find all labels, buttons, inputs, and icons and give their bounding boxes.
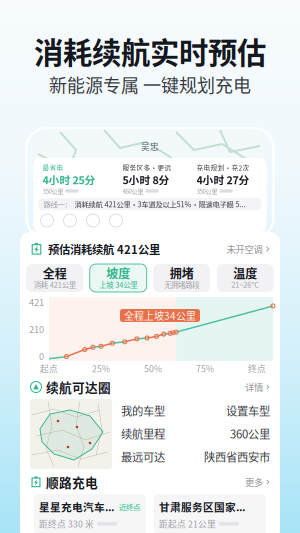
staticText: 星星充电汽车... xyxy=(39,499,114,514)
button[interactable]: 星星充电汽车... xyxy=(34,494,146,533)
staticText: 吴忠 xyxy=(141,140,159,152)
staticText: 终点 xyxy=(248,362,266,375)
staticText: 消耗 421公里 xyxy=(34,279,76,290)
staticText: 50% xyxy=(144,362,162,375)
button[interactable]: 详情 xyxy=(245,380,270,394)
staticText: 全程上坡34公里 xyxy=(124,308,196,323)
staticText: 全程 xyxy=(43,264,67,282)
staticText: 最省电 xyxy=(42,163,63,172)
staticText: 甘肃服务区国家... xyxy=(159,499,245,514)
staticText: 更多 xyxy=(245,475,263,489)
staticText: 详情 xyxy=(245,380,263,394)
staticText: 21~26°C xyxy=(231,279,259,290)
staticText: 路线一： xyxy=(43,199,71,209)
staticText: 顺路充电 xyxy=(46,473,98,491)
staticText: 拥堵 xyxy=(170,264,194,282)
button[interactable]: 更多 xyxy=(245,475,270,489)
button[interactable]: 甘肃服务区国家... xyxy=(154,494,266,533)
staticText: 未开空调 xyxy=(227,242,263,256)
staticText: 350公里 xyxy=(196,187,217,195)
staticText: 温度 xyxy=(233,264,257,282)
staticText: 续航里程 xyxy=(121,425,165,442)
staticText: 75% xyxy=(196,362,214,375)
button[interactable]: 未开空调 xyxy=(227,242,270,256)
staticText: 续航可达圈 xyxy=(46,378,111,396)
staticText: 我的车型 xyxy=(121,402,165,419)
staticText: 210 xyxy=(29,322,44,336)
staticText: 4小时 25分 xyxy=(42,172,95,187)
staticText: 最远可达 xyxy=(121,448,165,465)
staticText: 近终点 xyxy=(119,501,140,512)
staticText: 消耗续航 421公里·3车道及以上51%·限速电子眼 5... xyxy=(74,199,245,209)
staticText: 距终点 330 米 xyxy=(39,517,94,530)
staticText: 消耗续航实时预估 xyxy=(34,30,266,72)
staticText: 设置车型 xyxy=(226,402,270,419)
button[interactable]: 拥堵 xyxy=(153,264,210,292)
staticText: 360公里 xyxy=(230,425,270,442)
button[interactable]: 温度 xyxy=(217,264,274,292)
staticText: 421 xyxy=(29,295,44,309)
button[interactable]: 全程 xyxy=(26,264,83,292)
staticText: 0 xyxy=(39,349,44,363)
staticText: 坡度 xyxy=(106,264,130,282)
staticText: 充电规划·充2次 xyxy=(196,163,249,172)
staticText: 上坡 34公里 xyxy=(99,279,137,290)
staticText: 新能源专属 一键规划充电 xyxy=(49,71,251,98)
staticText: 460公里 xyxy=(122,187,143,195)
staticText: 距起点 21公里 xyxy=(159,517,216,530)
staticText: 起点 xyxy=(40,362,58,375)
staticText: 4小时 27分 xyxy=(196,172,249,187)
staticText: 350公里 xyxy=(42,187,63,195)
staticText: 陕西省西安市 xyxy=(204,448,270,465)
staticText: 预估消耗续航 421公里 xyxy=(48,241,160,257)
staticText: 无拥堵路段 xyxy=(164,279,199,290)
button[interactable]: 坡度 xyxy=(90,264,147,292)
staticText: 5小时 8分 xyxy=(122,172,169,187)
staticText: 服务区多·更远 xyxy=(122,163,171,172)
staticText: 25% xyxy=(92,362,110,375)
